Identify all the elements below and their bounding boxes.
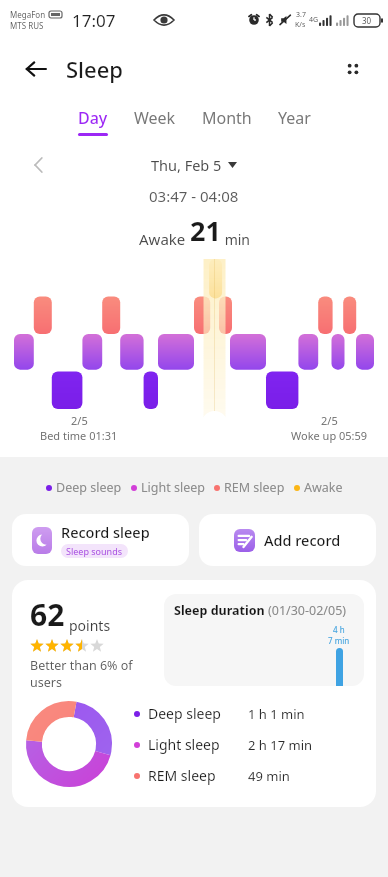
staticText: 21 [190,212,221,249]
staticText: Day [78,107,108,129]
staticText: Better than 6% of [30,657,133,674]
staticText: Month [202,107,252,129]
button[interactable]: Year [272,105,317,138]
staticText: Sleep duration [174,602,265,619]
staticText: Light sleep [141,479,205,496]
staticText: MegaFon [10,9,46,20]
button[interactable]: Record sleep [12,514,189,566]
staticText: 2 h 17 min [248,736,313,754]
button[interactable]: Day [72,105,114,138]
staticText: (01/30-02/05) [268,602,347,619]
button[interactable]: Previous day [22,148,56,182]
staticText: Woke up 05:59 [291,428,368,443]
staticText: 03:47 - 04:08 [149,186,239,206]
staticText: Bed time 01:31 [40,428,118,443]
staticText: Light sleep [148,735,220,754]
staticText: Deep sleep [148,704,221,723]
button[interactable]: Add record [199,514,376,566]
staticText: Sleep sounds [66,545,123,557]
staticText: Deep sleep [56,479,122,496]
button[interactable]: Week [128,105,182,138]
staticText: Awake [139,229,190,249]
staticText: Thu, Feb 5 [151,155,222,175]
staticText: MTS RUS [10,20,44,31]
staticText: Week [134,107,176,129]
staticText: REM sleep [148,766,216,785]
staticText: 30 [362,15,372,26]
staticText: 1 h 1 min [248,705,305,723]
staticText: Year [278,107,311,129]
staticText: 7 min [328,635,350,646]
staticText: Awake [304,479,343,496]
staticText: K/s [295,20,306,30]
staticText: 17:07 [72,9,116,32]
staticText: min [221,230,250,249]
staticText: 2/5 [71,413,88,428]
staticText: points [69,616,111,635]
button[interactable]: Month [196,105,258,138]
staticText: users [30,674,62,691]
staticText: 4 h [333,624,345,635]
staticText: REM sleep [224,479,285,496]
button[interactable]: More options [332,48,374,90]
staticText: 3.7 [296,10,306,20]
staticText: 4G [309,15,319,25]
staticText: Sleep [66,54,123,84]
staticText: 49 min [248,767,290,785]
staticText: 2/5 [321,413,338,428]
staticText: Add record [264,530,341,550]
staticText: 62 [30,594,65,635]
staticText: Record sleep [61,522,150,542]
button[interactable]: Back [16,49,56,89]
button[interactable]: 62 [12,580,376,807]
button[interactable]: Thu, Feb 5 [145,152,243,178]
